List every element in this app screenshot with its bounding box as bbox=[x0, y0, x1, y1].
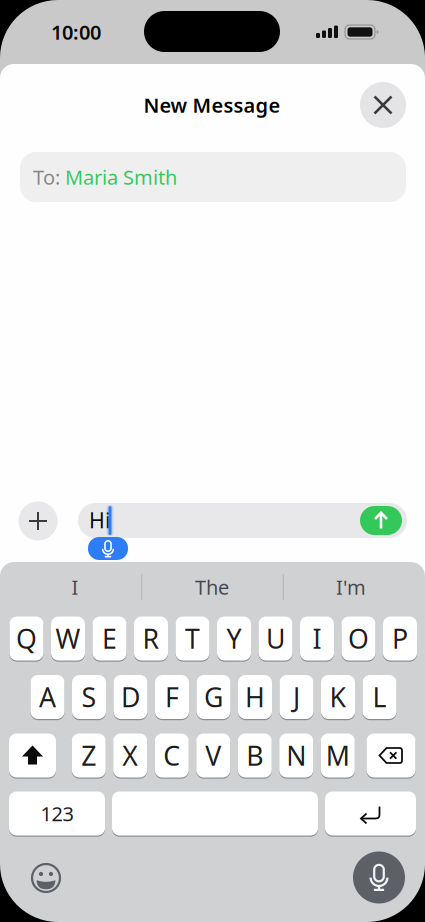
button[interactable]: C bbox=[0, 0, 425, 922]
staticText: I bbox=[312, 621, 321, 656]
button[interactable]: R bbox=[0, 0, 425, 922]
button[interactable]: L bbox=[0, 0, 425, 922]
staticText: The bbox=[195, 574, 229, 600]
staticText: P bbox=[392, 621, 408, 656]
button[interactable] bbox=[0, 0, 425, 922]
staticText: U bbox=[266, 621, 285, 656]
button[interactable]: The bbox=[0, 0, 425, 922]
staticText: F bbox=[165, 679, 179, 715]
staticText: G bbox=[204, 679, 223, 715]
staticText: Q bbox=[16, 621, 37, 656]
button[interactable]: O bbox=[0, 0, 425, 922]
button[interactable]: T bbox=[0, 0, 425, 922]
staticText: To: bbox=[33, 164, 65, 190]
button[interactable]: To: bbox=[0, 0, 425, 922]
staticText: Maria Smith bbox=[65, 164, 177, 190]
button[interactable]: Z bbox=[0, 0, 425, 922]
staticText: W bbox=[55, 621, 80, 656]
button[interactable]: I bbox=[0, 0, 425, 922]
staticText: L bbox=[372, 679, 386, 715]
button[interactable]: A bbox=[0, 0, 425, 922]
staticText: O bbox=[348, 621, 369, 656]
button[interactable] bbox=[0, 0, 425, 922]
staticText: X bbox=[122, 738, 138, 773]
staticText: T bbox=[185, 621, 200, 656]
staticText: J bbox=[293, 679, 300, 715]
button[interactable]: H bbox=[0, 0, 425, 922]
button[interactable] bbox=[0, 0, 425, 922]
staticText: E bbox=[102, 621, 117, 656]
staticText: Hi bbox=[89, 506, 111, 534]
button[interactable] bbox=[0, 0, 425, 922]
staticText: 10:00 bbox=[51, 19, 101, 45]
button[interactable]: W bbox=[0, 0, 425, 922]
staticText: R bbox=[142, 621, 159, 656]
staticText: B bbox=[246, 738, 263, 773]
button[interactable] bbox=[0, 0, 425, 922]
staticText: I bbox=[71, 574, 78, 600]
button[interactable]: B bbox=[0, 0, 425, 922]
button[interactable]: F bbox=[0, 0, 425, 922]
staticText: H bbox=[245, 679, 265, 715]
button[interactable] bbox=[0, 0, 425, 922]
button[interactable] bbox=[0, 0, 425, 922]
button[interactable]: V bbox=[0, 0, 425, 922]
button[interactable]: K bbox=[0, 0, 425, 922]
staticText: V bbox=[205, 738, 221, 773]
staticText: A bbox=[39, 679, 56, 715]
button[interactable]: S bbox=[0, 0, 425, 922]
button[interactable]: U bbox=[0, 0, 425, 922]
button[interactable] bbox=[0, 0, 425, 922]
button[interactable] bbox=[0, 0, 425, 922]
staticText: M bbox=[326, 738, 350, 773]
staticText: Z bbox=[81, 738, 96, 773]
staticText: I'm bbox=[336, 574, 366, 600]
button[interactable] bbox=[0, 0, 425, 922]
staticText: S bbox=[81, 679, 96, 715]
staticText: 123 bbox=[40, 800, 73, 827]
button[interactable]: Y bbox=[0, 0, 425, 922]
staticText: Y bbox=[226, 621, 241, 656]
button[interactable]: X bbox=[0, 0, 425, 922]
staticText: N bbox=[286, 738, 306, 773]
button[interactable]: 123 bbox=[0, 0, 425, 922]
button[interactable]: I'm bbox=[0, 0, 425, 922]
button[interactable]: G bbox=[0, 0, 425, 922]
button[interactable]: J bbox=[0, 0, 425, 922]
staticText: K bbox=[329, 679, 346, 715]
staticText: C bbox=[163, 738, 180, 773]
staticText: D bbox=[121, 679, 140, 715]
button[interactable]: E bbox=[0, 0, 425, 922]
button[interactable]: M bbox=[0, 0, 425, 922]
staticText: New Message bbox=[143, 92, 280, 118]
button[interactable]: Q bbox=[0, 0, 425, 922]
button[interactable]: N bbox=[0, 0, 425, 922]
button[interactable]: D bbox=[0, 0, 425, 922]
button[interactable]: I bbox=[0, 0, 425, 922]
button[interactable]: P bbox=[0, 0, 425, 922]
button[interactable] bbox=[0, 0, 425, 922]
